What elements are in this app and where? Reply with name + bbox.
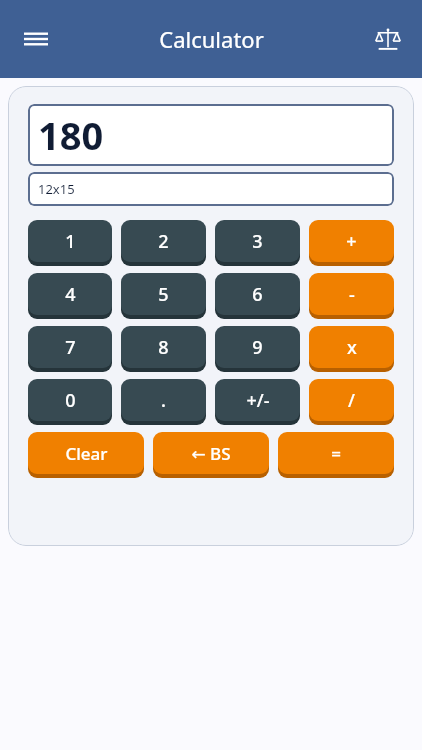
button[interactable]: 8: [121, 326, 206, 372]
button[interactable]: 0: [28, 379, 112, 425]
staticText: Calculator: [159, 24, 264, 54]
button[interactable]: 2: [121, 220, 206, 266]
button[interactable]: Menu: [14, 17, 58, 61]
staticText: 8: [158, 335, 169, 360]
staticText: 4: [65, 282, 76, 307]
staticText: /: [348, 388, 355, 413]
staticText: -: [349, 282, 355, 307]
button[interactable]: =: [278, 432, 394, 478]
staticText: 7: [65, 335, 76, 360]
staticText: 180: [38, 109, 104, 161]
staticText: 2: [158, 229, 169, 254]
staticText: =: [331, 442, 341, 465]
staticText: .: [161, 388, 166, 413]
button[interactable]: +: [309, 220, 394, 266]
staticText: 3: [252, 229, 263, 254]
staticText: 6: [252, 282, 263, 307]
button[interactable]: Unit converter: [366, 17, 410, 61]
staticText: x: [347, 335, 357, 360]
button[interactable]: .: [121, 379, 206, 425]
button[interactable]: 4: [28, 273, 112, 319]
staticText: 1: [65, 229, 76, 254]
button[interactable]: 6: [215, 273, 300, 319]
button[interactable]: 3: [215, 220, 300, 266]
button[interactable]: 1: [28, 220, 112, 266]
staticText: Clear: [65, 442, 108, 465]
button[interactable]: 7: [28, 326, 112, 372]
button[interactable]: /: [309, 379, 394, 425]
staticText: 12x15: [38, 180, 75, 198]
button[interactable]: 9: [215, 326, 300, 372]
staticText: 0: [65, 388, 76, 413]
button[interactable]: x: [309, 326, 394, 372]
staticText: 9: [252, 335, 263, 360]
staticText: 5: [158, 282, 169, 307]
button[interactable]: ← BS: [153, 432, 269, 478]
staticText: ← BS: [191, 442, 231, 465]
staticText: +: [346, 229, 357, 254]
button[interactable]: 5: [121, 273, 206, 319]
button[interactable]: Clear: [28, 432, 144, 478]
staticText: +/-: [246, 388, 270, 413]
button[interactable]: -: [309, 273, 394, 319]
button[interactable]: +/-: [215, 379, 300, 425]
